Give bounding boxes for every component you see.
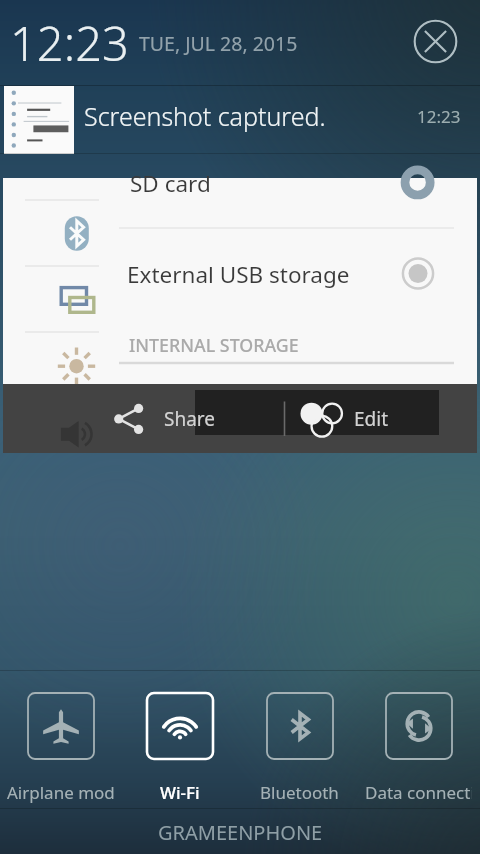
button[interactable]: Bluetooth	[246, 671, 353, 807]
button[interactable]: Data connecti	[365, 671, 472, 807]
staticText: Wi-Fi	[160, 781, 200, 804]
staticText: INTERNAL STORAGE	[129, 333, 299, 357]
button[interactable]: Clear all notifications	[411, 17, 460, 66]
staticText: Airplane mod	[7, 781, 114, 804]
button[interactable]: Airplane mod	[7, 671, 114, 807]
staticText: GRAMEENPHONE	[158, 819, 323, 846]
staticText: Bluetooth	[260, 781, 339, 804]
staticText: Screenshot captured.	[84, 99, 326, 133]
staticText: SD card	[130, 168, 211, 199]
staticText: External USB storage	[127, 259, 350, 290]
staticText: 12:23	[10, 11, 129, 75]
staticText: 12:23	[417, 105, 461, 128]
button[interactable]: Screenshot captured.	[0, 86, 480, 154]
button[interactable]: Wi-Fi	[126, 671, 233, 807]
staticText: Data connecti	[365, 781, 472, 804]
staticText: Edit	[354, 406, 389, 432]
staticText: Share	[164, 406, 216, 432]
staticText: TUE, JUL 28, 2015	[139, 30, 298, 57]
